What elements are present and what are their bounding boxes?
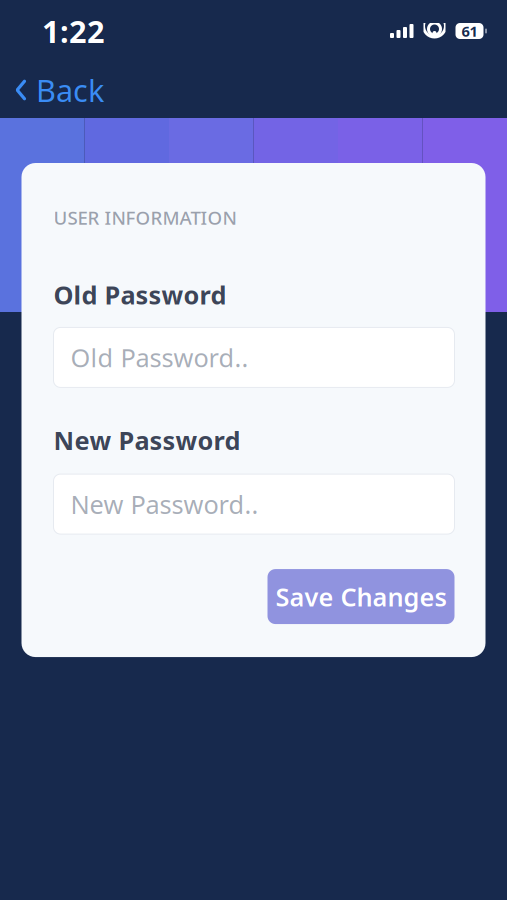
staticText: 1:22: [42, 11, 105, 51]
button[interactable]: Save Changes: [267, 569, 454, 624]
staticText: New Password..: [70, 487, 258, 521]
button[interactable]: Back: [0, 62, 118, 118]
staticText: New Password: [53, 423, 240, 457]
staticText: Old Password..: [70, 341, 248, 374]
staticText: Back: [36, 70, 104, 110]
staticText: USER INFORMATION: [53, 205, 236, 230]
staticText: Old Password: [53, 278, 226, 311]
staticText: Save Changes: [275, 580, 446, 613]
staticText: 61: [461, 21, 477, 41]
